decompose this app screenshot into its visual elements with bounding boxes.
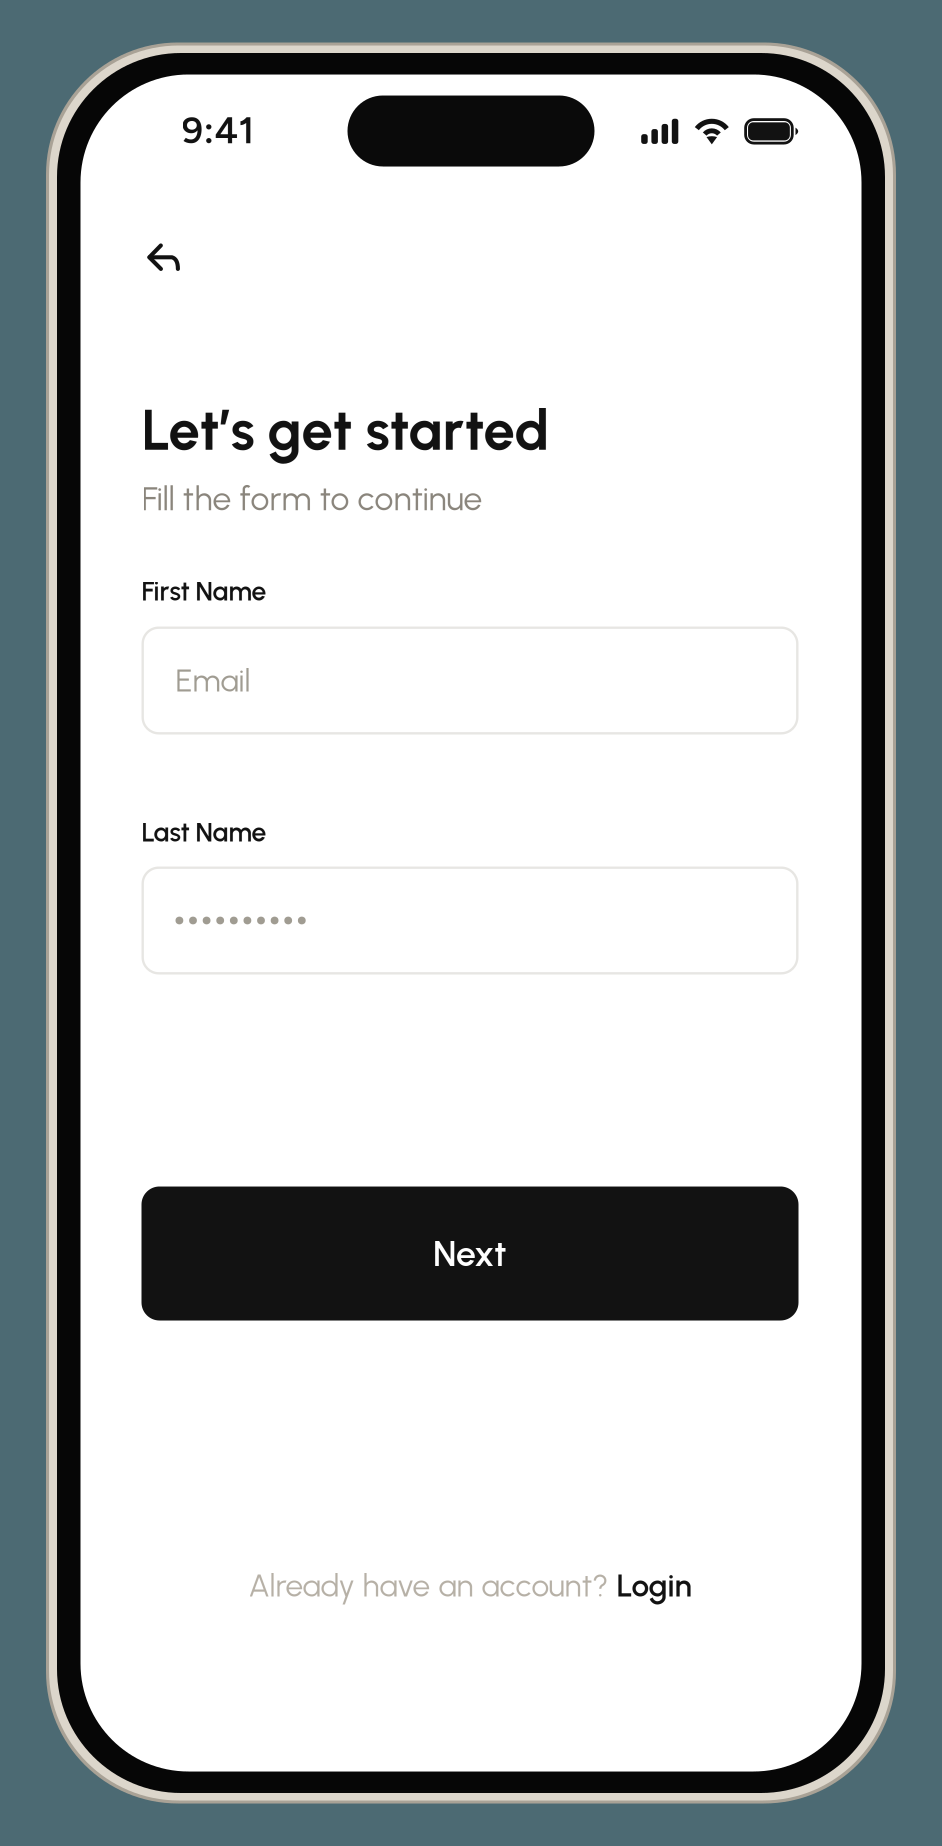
button[interactable]: Next — [141, 1186, 798, 1320]
button[interactable]: Back — [146, 218, 270, 296]
button[interactable]: Already have an account? — [141, 1558, 798, 1612]
staticText: 9:41 — [181, 107, 254, 153]
staticText: Email — [175, 662, 250, 699]
staticText: Let’s get started — [141, 396, 549, 464]
staticText: Last Name — [141, 816, 266, 848]
staticText: Login — [616, 1567, 691, 1604]
staticText: Already have an account? — [248, 1567, 616, 1604]
staticText: First Name — [141, 575, 266, 607]
staticText: Fill the form to continue — [141, 478, 482, 519]
staticText: Next — [433, 1232, 507, 1275]
